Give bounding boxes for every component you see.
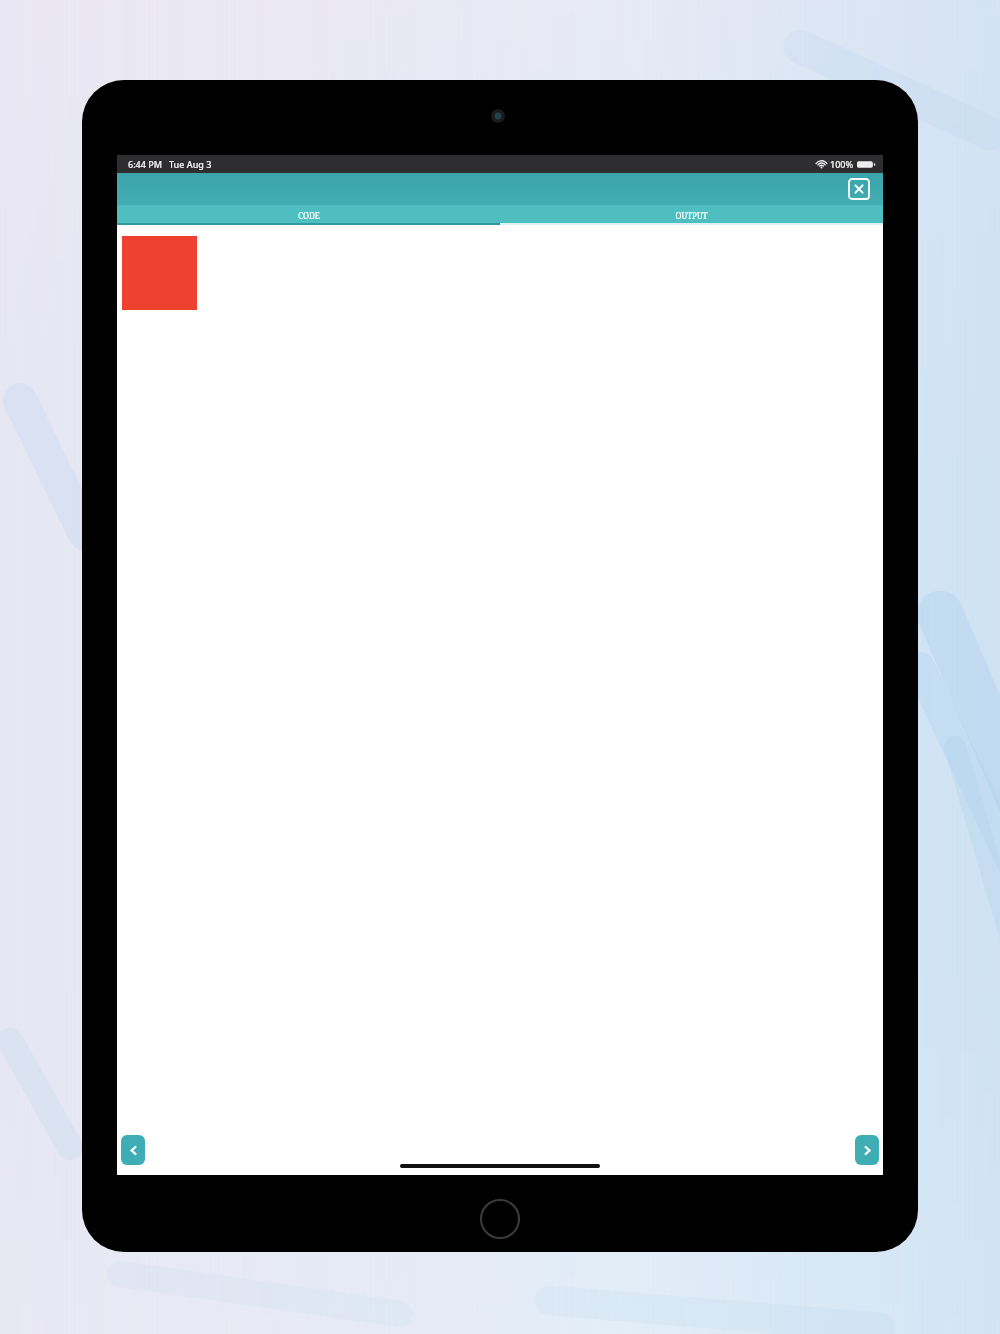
button[interactable]: CODE: [117, 205, 500, 225]
staticText: 6:44 PM Tue Aug 3: [128, 158, 212, 170]
button[interactable]: OUTPUT: [500, 205, 883, 225]
staticText: CODE: [298, 210, 320, 221]
staticText: 100%: [830, 158, 854, 170]
button[interactable]: Previous: [121, 1135, 145, 1165]
staticText: OUTPUT: [675, 210, 708, 221]
button[interactable]: Next: [855, 1135, 879, 1165]
button[interactable]: Close: [849, 179, 869, 199]
